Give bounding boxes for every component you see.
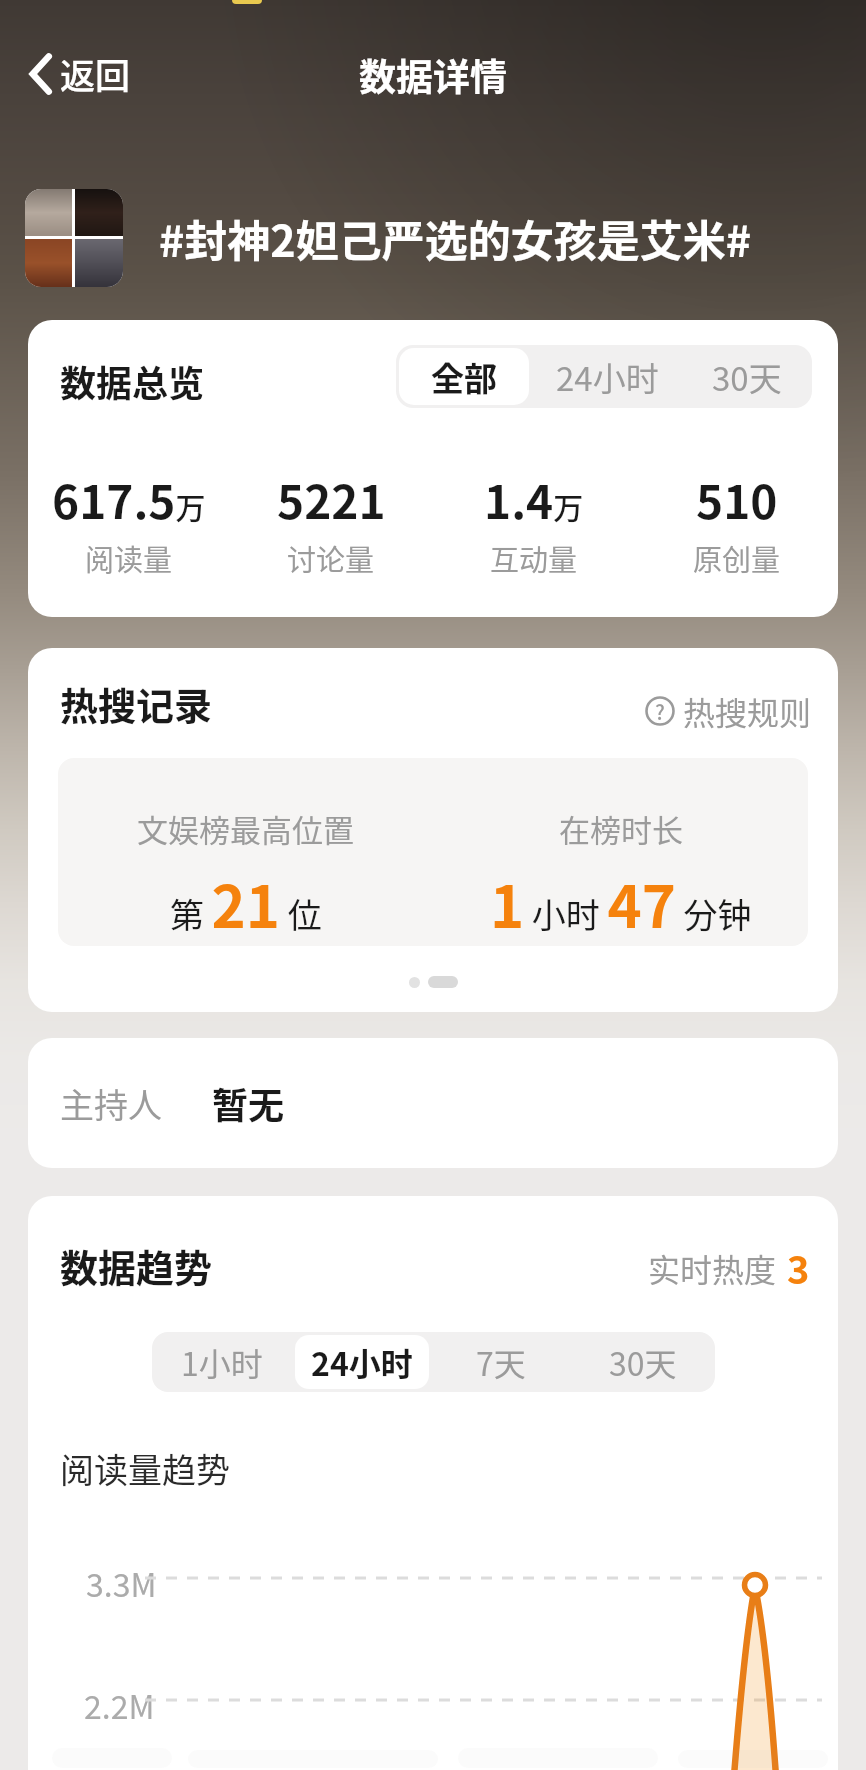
staticText: 数据趋势 bbox=[60, 1238, 213, 1293]
staticText: 原创量 bbox=[693, 537, 781, 579]
button[interactable]: 返回 bbox=[28, 48, 131, 99]
staticText: 主持人 bbox=[60, 1079, 162, 1128]
staticText: 3.3M bbox=[86, 1560, 157, 1606]
staticText: 第 21 位 bbox=[170, 861, 322, 945]
button[interactable]: 1小时 bbox=[152, 1332, 292, 1392]
staticText: 2.2M bbox=[84, 1682, 155, 1728]
staticText: 1 小时 47 分钟 bbox=[490, 861, 752, 945]
staticText: 暂无 bbox=[212, 1077, 285, 1129]
staticText: 24小时 bbox=[556, 353, 659, 401]
staticText: 30天 bbox=[712, 353, 782, 401]
staticText: 617.5万 bbox=[52, 466, 206, 533]
button[interactable]: ? bbox=[645, 688, 812, 734]
staticText: 数据总览 bbox=[60, 355, 205, 407]
staticText: 7天 bbox=[476, 1339, 526, 1385]
staticText: #封神2妲己严选的女孩是艾米# bbox=[159, 207, 752, 269]
staticText: 文娱榜最高位置 bbox=[137, 806, 354, 851]
staticText: 讨论量 bbox=[287, 537, 375, 579]
staticText: 返回 bbox=[60, 48, 131, 99]
button[interactable]: 30天 bbox=[570, 1332, 715, 1392]
button[interactable]: 24小时 bbox=[532, 345, 682, 408]
button[interactable]: 7天 bbox=[432, 1332, 570, 1392]
button[interactable]: 全部 bbox=[399, 348, 529, 405]
staticText: 热搜规则 bbox=[683, 688, 812, 734]
button[interactable]: 24小时 bbox=[295, 1335, 429, 1389]
staticText: 24小时 bbox=[311, 1339, 413, 1385]
staticText: 热搜记录 bbox=[60, 676, 213, 731]
button[interactable]: 30天 bbox=[682, 345, 812, 408]
staticText: ? bbox=[655, 697, 665, 726]
staticText: 30天 bbox=[609, 1339, 677, 1385]
staticText: 1.4万 bbox=[484, 466, 584, 533]
staticText: 全部 bbox=[431, 353, 497, 401]
staticText: 在榜时长 bbox=[559, 806, 683, 851]
staticText: 3 bbox=[787, 1240, 810, 1295]
staticText: 1小时 bbox=[181, 1339, 263, 1385]
staticText: 510 bbox=[696, 466, 778, 533]
staticText: 数据详情 bbox=[359, 48, 507, 102]
staticText: 实时热度 bbox=[648, 1245, 777, 1291]
staticText: 互动量 bbox=[490, 537, 578, 579]
staticText: 5221 bbox=[277, 466, 386, 533]
staticText: 阅读量趋势 bbox=[60, 1444, 230, 1493]
staticText: 阅读量 bbox=[85, 537, 173, 579]
